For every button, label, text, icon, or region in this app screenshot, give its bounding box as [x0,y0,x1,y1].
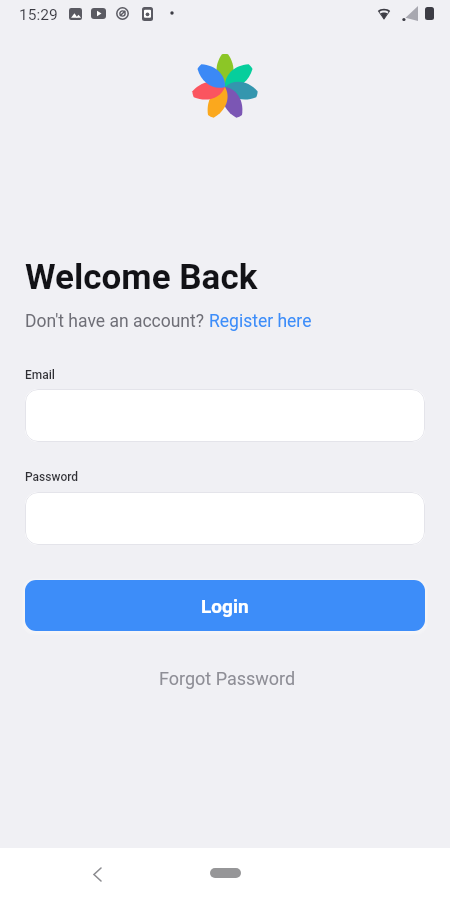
button[interactable]: Forgot Password [149,662,306,695]
button[interactable]: Register here [209,311,312,332]
button[interactable]: Home [210,868,241,878]
button[interactable] [25,389,425,442]
staticText: Don't have an account? [25,311,209,332]
button[interactable] [25,492,425,545]
staticText: Password [25,470,79,484]
button[interactable]: Back [82,859,112,889]
staticText: Email [25,368,55,382]
staticText: Login [201,595,249,617]
staticText: Welcome Back [25,257,258,298]
button[interactable]: Login [25,580,425,631]
staticText: 15:29 [19,6,58,24]
